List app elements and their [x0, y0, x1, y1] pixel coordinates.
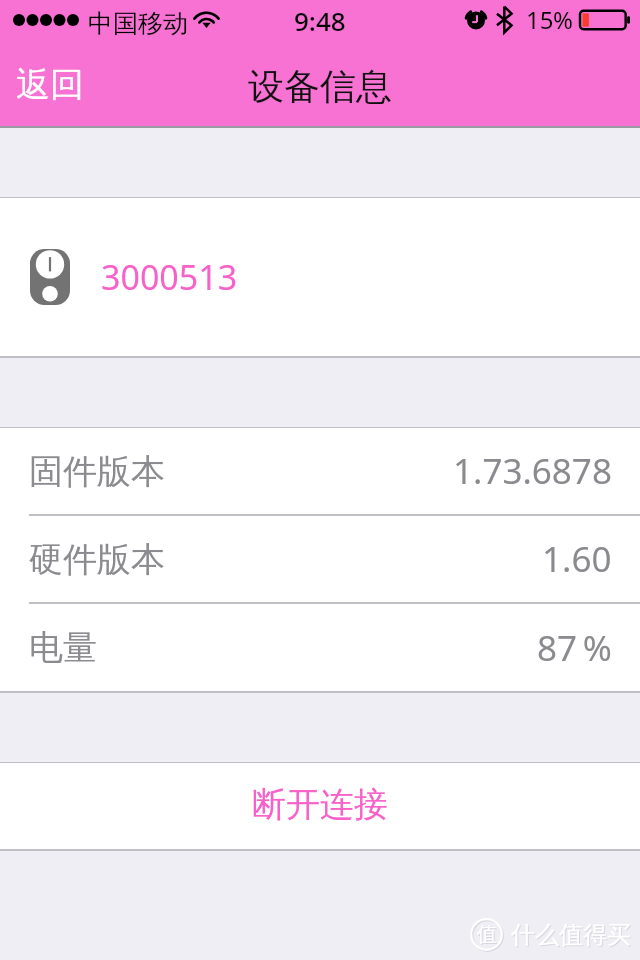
staticText: 中国移动 [88, 8, 188, 39]
staticText: 3000513 [101, 254, 238, 300]
staticText: 断开连接 [252, 783, 388, 826]
staticText: 87 % [537, 624, 612, 672]
button[interactable]: 断开连接 [0, 763, 640, 849]
button[interactable]: 硬件版本 [0, 516, 640, 602]
staticText: 值 [477, 922, 497, 947]
button[interactable]: 返回 Back [4, 53, 96, 116]
staticText: 值 [478, 923, 498, 948]
button[interactable]: 电量 [0, 604, 640, 691]
staticText: 15 [526, 3, 554, 36]
button[interactable]: 3000513 [0, 198, 640, 356]
staticText: 1.73.6878 [453, 447, 612, 495]
staticText: 什么值得买 [512, 921, 632, 951]
staticText: 9:48 [294, 3, 346, 38]
staticText: 返回 [16, 63, 84, 106]
staticText: 1.60 [542, 535, 612, 583]
staticText: 设备信息 [248, 64, 392, 109]
staticText: 什么值得买 [511, 920, 631, 950]
staticText: 电量 [29, 626, 97, 669]
staticText: % [553, 3, 573, 36]
staticText: 固件版本 [29, 450, 165, 493]
staticText: 硬件版本 [29, 538, 165, 581]
button[interactable]: 固件版本 [0, 428, 640, 514]
